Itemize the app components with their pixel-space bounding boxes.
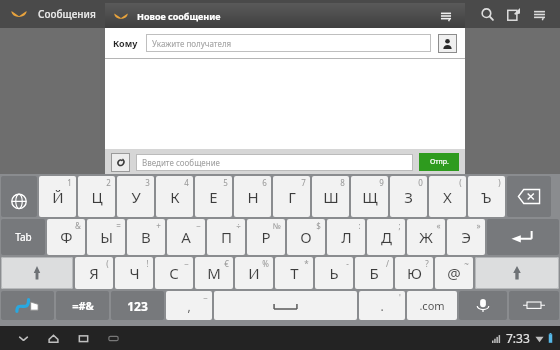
- staticText: Ъ: [481, 187, 492, 207]
- staticText: 7:33: [506, 330, 530, 346]
- button[interactable]: =#&: [56, 291, 109, 320]
- button[interactable]: ~: [435, 257, 473, 289]
- button[interactable]: №: [247, 219, 285, 255]
- staticText: Я: [89, 263, 99, 283]
- button[interactable]: €: [195, 257, 233, 289]
- staticText: К: [170, 187, 180, 207]
- button[interactable]: 6: [234, 176, 271, 217]
- staticText: *: [304, 258, 309, 269]
- button[interactable]: ÷: [207, 219, 245, 255]
- staticText: Й: [52, 187, 64, 207]
- button[interactable]: Handwriting: [1, 291, 54, 320]
- button[interactable]: $: [287, 219, 325, 255]
- staticText: Новое сообщение: [137, 10, 221, 22]
- staticText: Кому: [113, 37, 138, 49]
- button[interactable]: Space: [214, 291, 357, 320]
- button[interactable]: ;: [367, 219, 405, 255]
- staticText: 8: [340, 177, 345, 188]
- button[interactable]: More options: [526, 1, 552, 27]
- button[interactable]: &: [47, 219, 85, 255]
- button[interactable]: Hide keyboard: [509, 291, 559, 320]
- button[interactable]: 1: [39, 176, 76, 217]
- button[interactable]: 7: [273, 176, 310, 217]
- button[interactable]: (: [429, 176, 466, 217]
- button[interactable]: Shift: [475, 257, 559, 289]
- staticText: Укажите получателя: [152, 38, 232, 49]
- staticText: &: [75, 220, 81, 231]
- button[interactable]: Home: [38, 327, 68, 349]
- button[interactable]: !: [115, 257, 153, 289]
- button[interactable]: Enter: [487, 219, 559, 255]
- button[interactable]: Укажите получателя: [146, 34, 431, 52]
- button[interactable]: 5: [195, 176, 232, 217]
- staticText: .com: [419, 298, 445, 313]
- button[interactable]: Tab: [1, 219, 45, 255]
- button[interactable]: Backspace: [507, 176, 551, 217]
- button[interactable]: 3: [117, 176, 154, 217]
- staticText: /: [386, 258, 389, 269]
- staticText: 3: [145, 177, 150, 188]
- button[interactable]: :: [327, 219, 365, 255]
- button[interactable]: -: [315, 257, 353, 289]
- staticText: С: [169, 263, 179, 283]
- button[interactable]: Compose: [500, 1, 526, 27]
- staticText: ,: [187, 298, 191, 314]
- button[interactable]: Shift: [1, 257, 73, 289]
- staticText: Д: [381, 227, 392, 247]
- staticText: Сообщения: [38, 7, 96, 21]
- button[interactable]: Введите сообщение: [136, 154, 413, 171]
- button[interactable]: ': [359, 291, 405, 320]
- button[interactable]: Search: [474, 1, 500, 27]
- staticText: П: [221, 227, 232, 247]
- staticText: Ь: [329, 263, 339, 283]
- button[interactable]: −: [155, 257, 193, 289]
- staticText: €: [224, 258, 229, 269]
- button[interactable]: 8: [312, 176, 349, 217]
- staticText: №: [272, 220, 281, 231]
- button[interactable]: 123: [111, 291, 164, 320]
- button[interactable]: Change language: [1, 176, 37, 217]
- staticText: 0: [418, 177, 423, 188]
- staticText: 9: [379, 177, 384, 188]
- button[interactable]: Recent apps: [68, 327, 98, 349]
- button[interactable]: 4: [156, 176, 193, 217]
- button[interactable]: Back: [8, 327, 38, 349]
- button[interactable]: /: [355, 257, 393, 289]
- staticText: 123: [127, 298, 148, 314]
- button[interactable]: »: [447, 219, 485, 255]
- staticText: ;: [398, 220, 401, 231]
- button[interactable]: .com: [407, 291, 457, 320]
- button[interactable]: −: [166, 291, 212, 320]
- staticText: +: [156, 220, 161, 231]
- staticText: =: [116, 220, 121, 231]
- staticText: В: [141, 227, 151, 247]
- button[interactable]: =: [87, 219, 125, 255]
- staticText: 5: [223, 177, 228, 188]
- button[interactable]: Отпр.: [419, 153, 459, 171]
- button[interactable]: Screenshot: [98, 327, 128, 349]
- staticText: !: [146, 258, 149, 269]
- staticText: =#&: [72, 298, 94, 313]
- button[interactable]: *: [275, 257, 313, 289]
- button[interactable]: «: [407, 219, 445, 255]
- staticText: (: [459, 177, 462, 188]
- button[interactable]: (: [75, 257, 113, 289]
- staticText: 4: [184, 177, 189, 188]
- button[interactable]: ): [468, 176, 505, 217]
- button[interactable]: Attach: [111, 153, 130, 172]
- button[interactable]: 2: [78, 176, 115, 217]
- button[interactable]: −: [167, 219, 205, 255]
- button[interactable]: Voice input: [459, 291, 507, 320]
- staticText: »: [476, 220, 481, 231]
- button[interactable]: More options: [435, 5, 457, 27]
- staticText: Ф: [60, 227, 73, 247]
- button[interactable]: 9: [351, 176, 388, 217]
- button[interactable]: ?: [395, 257, 433, 289]
- staticText: 2: [106, 177, 111, 188]
- button[interactable]: +: [127, 219, 165, 255]
- button[interactable]: Contacts: [438, 34, 457, 53]
- staticText: $: [316, 220, 321, 231]
- button[interactable]: %: [235, 257, 273, 289]
- button[interactable]: 0: [390, 176, 427, 217]
